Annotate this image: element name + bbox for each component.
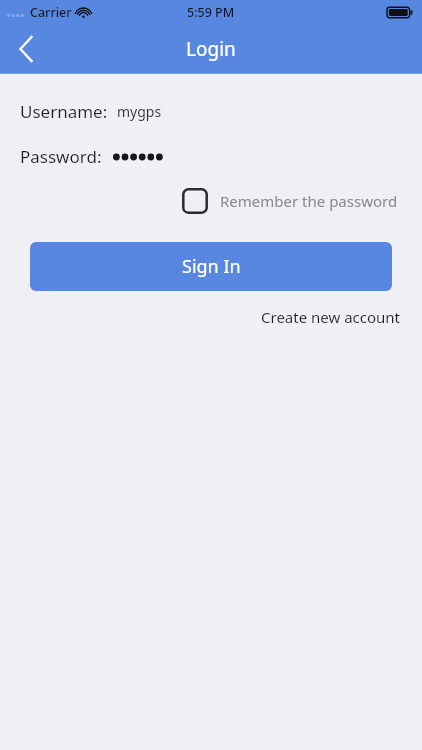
staticText: Carrier xyxy=(30,4,72,21)
staticText: Username: xyxy=(20,100,108,123)
staticText: mygps xyxy=(117,102,162,121)
button[interactable]: Create new account xyxy=(259,303,402,331)
staticText: Password: xyxy=(20,145,102,168)
button[interactable]: Sign In xyxy=(30,242,392,291)
staticText: Login xyxy=(186,36,236,62)
button[interactable]: Back xyxy=(0,24,52,73)
staticText: Create new account xyxy=(261,307,400,327)
button[interactable]: Remember the password xyxy=(178,184,402,218)
staticText: 5:59 PM xyxy=(187,4,235,21)
staticText: Remember the password xyxy=(220,191,398,211)
staticText: Sign In xyxy=(182,254,241,279)
